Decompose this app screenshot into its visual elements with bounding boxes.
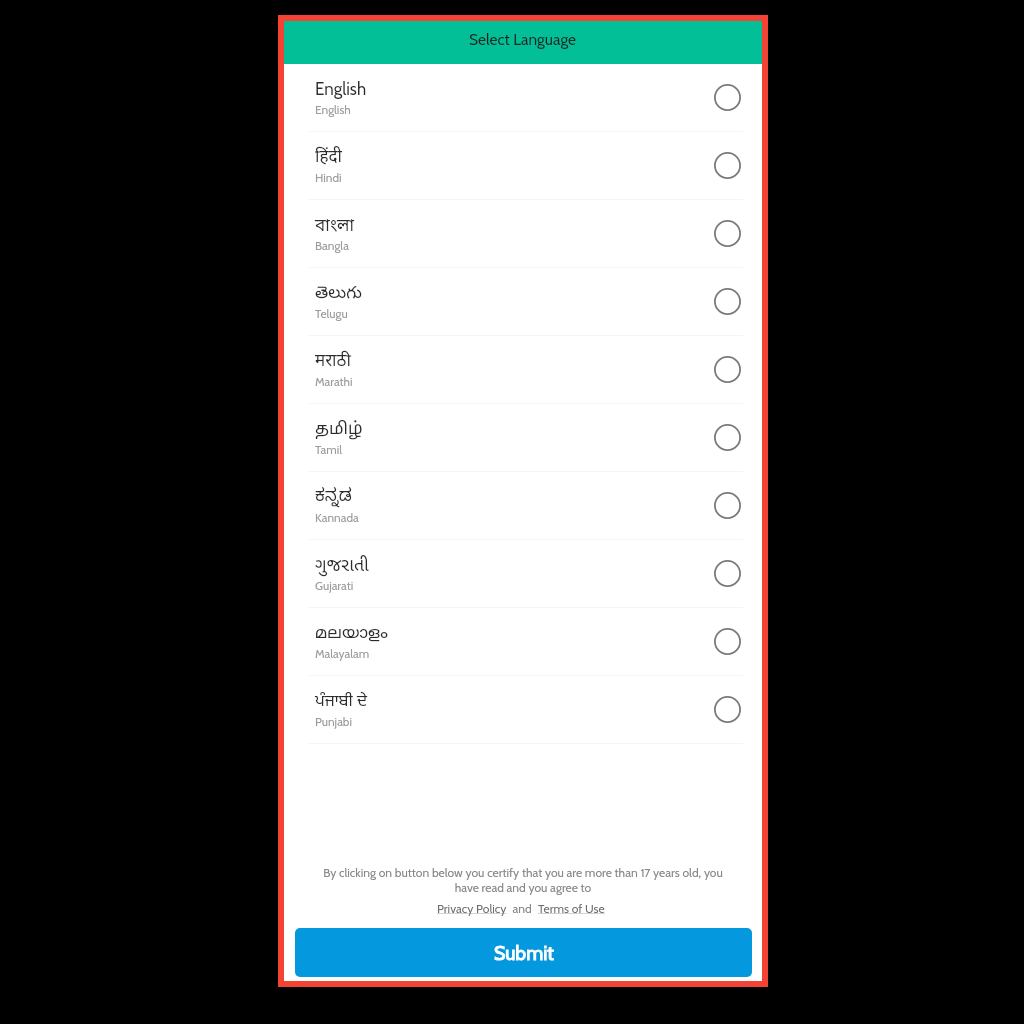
staticText: Submit bbox=[494, 941, 554, 965]
staticText: Telugu bbox=[315, 307, 348, 321]
staticText: English bbox=[315, 103, 351, 117]
button[interactable]: Terms of Use bbox=[538, 901, 605, 916]
staticText: Malayalam bbox=[315, 647, 370, 661]
button[interactable]: Privacy Policy bbox=[437, 901, 507, 916]
staticText: ಕನ್ನಡ bbox=[315, 487, 352, 510]
button[interactable]: English bbox=[284, 64, 762, 132]
staticText: Tamil bbox=[315, 443, 343, 457]
button[interactable]: Select Marathi bbox=[714, 356, 741, 383]
staticText: Bangla bbox=[315, 239, 349, 253]
staticText: Marathi bbox=[315, 375, 353, 389]
staticText: and bbox=[507, 901, 538, 916]
button[interactable]: Select Bangla bbox=[714, 220, 741, 247]
button[interactable]: ગુજરાતી bbox=[284, 540, 762, 608]
staticText: English bbox=[315, 79, 367, 100]
button[interactable]: Select Hindi bbox=[714, 152, 741, 179]
staticText: By clicking on button below you certify … bbox=[319, 865, 727, 895]
button[interactable]: Select English bbox=[714, 84, 741, 111]
staticText: தமிழ் bbox=[315, 419, 363, 440]
staticText: Kannada bbox=[315, 511, 359, 525]
button[interactable]: ಕನ್ನಡ bbox=[284, 472, 762, 540]
staticText: తెలుగు bbox=[315, 283, 362, 306]
button[interactable]: Select Malayalam bbox=[714, 628, 741, 655]
staticText: Gujarati bbox=[315, 579, 354, 593]
staticText: Punjabi bbox=[315, 715, 352, 729]
button[interactable]: தமிழ் bbox=[284, 404, 762, 472]
staticText: मराठी bbox=[315, 351, 351, 373]
button[interactable]: Select Kannada bbox=[714, 492, 741, 519]
staticText: বাংলা bbox=[315, 215, 355, 238]
button[interactable]: Submit bbox=[295, 928, 752, 977]
button[interactable]: Select Telugu bbox=[714, 288, 741, 315]
button[interactable]: বাংলা bbox=[284, 200, 762, 268]
staticText: മലയാളം bbox=[315, 623, 389, 644]
button[interactable]: Select Punjabi bbox=[714, 696, 741, 723]
staticText: हिंदी bbox=[315, 147, 342, 169]
button[interactable]: मराठी bbox=[284, 336, 762, 404]
staticText: ਪੰਜਾਬੀ ਦੇ bbox=[315, 691, 368, 712]
staticText: Hindi bbox=[315, 171, 342, 185]
button[interactable]: Select Tamil bbox=[714, 424, 741, 451]
button[interactable]: Select Gujarati bbox=[714, 560, 741, 587]
staticText: ગુજરાતી bbox=[315, 555, 369, 578]
button[interactable]: മലയാളം bbox=[284, 608, 762, 676]
staticText: Select Language bbox=[469, 30, 577, 49]
button[interactable]: हिंदी bbox=[284, 132, 762, 200]
button[interactable]: తెలుగు bbox=[284, 268, 762, 336]
button[interactable]: ਪੰਜਾਬੀ ਦੇ bbox=[284, 676, 762, 744]
